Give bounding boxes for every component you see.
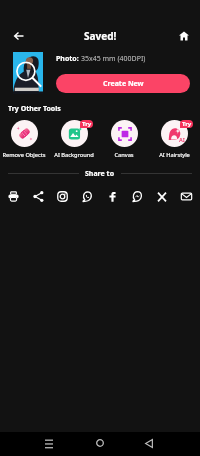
button[interactable]: WhatsApp xyxy=(77,186,98,207)
button[interactable]: Home xyxy=(173,25,194,46)
button[interactable]: Print xyxy=(3,186,24,207)
staticText: Photo: xyxy=(56,54,81,64)
button[interactable]: Instagram xyxy=(52,186,73,207)
button[interactable]: Recent apps xyxy=(39,433,59,453)
button[interactable]: Messenger xyxy=(127,186,148,207)
button[interactable]: Canvas xyxy=(99,116,149,159)
staticText: Canvas xyxy=(114,151,134,159)
staticText: AI xyxy=(179,136,185,143)
staticText: Try xyxy=(82,120,92,128)
staticText: AI Hairstyle xyxy=(159,151,190,159)
staticText: AI Background xyxy=(54,151,94,159)
staticText: Remove Objects xyxy=(2,151,46,159)
staticText: Try Other Tools xyxy=(8,104,61,114)
staticText: Create New xyxy=(103,79,144,89)
button[interactable]: Email xyxy=(176,186,197,207)
staticText: Saved! xyxy=(84,29,117,43)
staticText: Share to xyxy=(85,169,115,179)
button[interactable]: Share xyxy=(28,186,49,207)
button[interactable]: AI xyxy=(149,116,199,159)
button[interactable]: Try xyxy=(49,116,99,159)
button[interactable]: Facebook xyxy=(102,186,123,207)
button[interactable]: Home xyxy=(90,433,110,453)
staticText: Try xyxy=(182,120,192,128)
button[interactable]: Back xyxy=(139,433,159,453)
button[interactable]: Remove Objects xyxy=(0,116,49,159)
button[interactable]: X xyxy=(151,186,172,207)
button[interactable]: Create New xyxy=(56,74,190,93)
button[interactable]: Back xyxy=(8,25,29,46)
staticText: 35x45 mm (400DPI) xyxy=(81,54,146,64)
button[interactable]: Preview photo xyxy=(13,52,43,94)
